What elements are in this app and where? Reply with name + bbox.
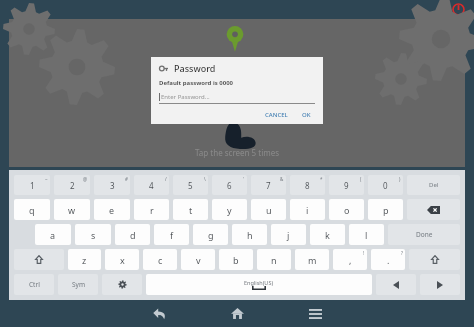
button[interactable]: . [371,249,405,270]
staticText: Done [416,230,433,239]
button[interactable]: , [333,249,367,270]
staticText: CANCEL [265,111,288,119]
button[interactable]: Keyboard settings [102,274,142,295]
staticText: c [158,254,163,266]
button[interactable]: j [271,224,306,245]
button[interactable]: Ctrl [14,274,54,295]
staticText: v [196,254,201,266]
staticText: x [120,254,125,266]
button[interactable]: Home [209,300,265,327]
staticText: / [165,176,167,182]
button[interactable]: f [154,224,189,245]
button[interactable]: y [212,199,247,220]
button[interactable]: r [134,199,169,220]
button[interactable]: Shift [14,249,64,270]
button[interactable]: 2 [54,175,90,195]
button[interactable]: z [68,249,101,270]
button[interactable]: h [232,224,267,245]
staticText: Sym [72,280,85,289]
staticText: k [325,229,330,241]
button[interactable]: t [173,199,208,220]
staticText: ! [363,250,365,256]
staticText: & [280,176,284,182]
staticText: s [91,229,96,241]
button[interactable]: 5 [173,175,208,195]
button[interactable]: Done [388,224,460,245]
button[interactable]: s [75,224,111,245]
staticText: English(US) [244,279,274,286]
staticText: j [287,229,290,241]
button[interactable]: Power [450,1,466,17]
button[interactable]: 7 [251,175,286,195]
staticText: 1 [30,180,35,191]
staticText: w [68,204,76,216]
button[interactable]: a [35,224,71,245]
staticText: l [365,229,368,241]
staticText: . [387,254,390,266]
staticText: ( [360,176,362,182]
button[interactable]: OK [298,109,315,121]
staticText: f [170,229,174,241]
button[interactable]: Enter Password... [159,93,315,101]
button[interactable]: 6 [212,175,247,195]
staticText: ~ [45,176,48,182]
button[interactable]: Shift [409,249,460,270]
button[interactable]: b [219,249,253,270]
button[interactable]: d [115,224,150,245]
staticText: # [125,176,128,182]
staticText: 6 [227,180,232,191]
staticText: , [349,254,352,266]
staticText: u [266,204,272,216]
button[interactable]: v [181,249,215,270]
staticText: Ctrl [29,280,40,289]
button[interactable]: g [193,224,228,245]
staticText: Default password is 0000 [159,79,234,87]
button[interactable]: 0 [368,175,403,195]
staticText: OK [302,111,311,119]
button[interactable]: Back [131,300,187,327]
staticText: d [130,229,136,241]
staticText: Del [429,181,439,189]
button[interactable]: Space [146,274,372,295]
button[interactable]: Del [407,175,460,195]
staticText: r [150,204,154,216]
button[interactable]: 8 [290,175,325,195]
staticText: 3 [110,180,115,191]
button[interactable]: k [310,224,345,245]
staticText: 4 [149,180,154,191]
button[interactable]: q [14,199,50,220]
staticText: 5 [188,180,193,191]
button[interactable]: Backspace [407,199,460,220]
button[interactable]: u [251,199,286,220]
button[interactable]: n [257,249,291,270]
button[interactable]: l [349,224,384,245]
staticText: Tap the screen 5 times [195,147,280,158]
staticText: n [271,254,277,266]
staticText: 7 [266,180,271,191]
button[interactable]: 4 [134,175,169,195]
button[interactable]: e [94,199,130,220]
staticText: Enter Password... [161,93,210,101]
staticText: q [29,204,35,216]
button[interactable]: c [143,249,177,270]
button[interactable]: 1 [14,175,50,195]
button[interactable]: i [290,199,325,220]
button[interactable]: Move right [420,274,460,295]
staticText: ' [243,176,245,182]
button[interactable]: CANCEL [261,109,292,121]
button[interactable]: Sym [58,274,98,295]
button[interactable]: 3 [94,175,130,195]
staticText: p [383,204,389,216]
staticText: ) [399,176,401,182]
button[interactable]: x [105,249,139,270]
staticText: * [320,176,323,182]
button[interactable]: o [329,199,364,220]
staticText: 0 [383,180,388,191]
button[interactable]: 9 [329,175,364,195]
button[interactable]: Move left [376,274,416,295]
button[interactable]: w [54,199,90,220]
staticText: 8 [305,180,310,191]
button[interactable]: Menu [287,300,343,327]
button[interactable]: m [295,249,329,270]
button[interactable]: p [368,199,403,220]
